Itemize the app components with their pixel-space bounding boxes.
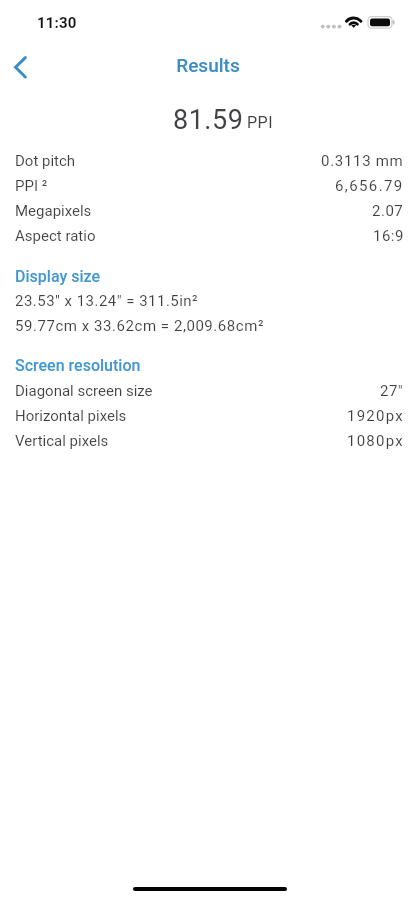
button[interactable]: Diagonal screen size (15, 382, 404, 407)
staticText: Results (0, 54, 416, 76)
button[interactable]: Horizontal pixels (15, 407, 404, 432)
staticText: Display size (15, 267, 101, 286)
staticText: 16:9 (373, 227, 404, 245)
staticText: Megapixels (15, 202, 92, 220)
button[interactable]: Vertical pixels (15, 432, 404, 457)
staticText: Dot pitch (15, 152, 76, 170)
staticText: 11:30 (37, 14, 77, 32)
staticText: Aspect ratio (15, 227, 96, 245)
staticText: PPI ² (15, 177, 48, 195)
button[interactable]: Back (0, 45, 42, 89)
staticText: Vertical pixels (15, 432, 109, 450)
staticText: 27" (380, 382, 404, 400)
button[interactable]: Dot pitch (15, 152, 404, 177)
staticText: Screen resolution (15, 356, 141, 375)
staticText: 1080px (347, 432, 404, 450)
staticText: 81.59 (173, 104, 244, 136)
staticText: 59.77cm x 33.62cm = 2,009.68cm² (15, 317, 264, 335)
staticText: Diagonal screen size (15, 382, 153, 400)
button[interactable]: Aspect ratio (15, 227, 404, 252)
staticText: 0.3113 mm (321, 152, 404, 170)
staticText: 1920px (347, 407, 404, 425)
staticText: PPI (247, 113, 274, 132)
button[interactable]: Megapixels (15, 202, 404, 227)
staticText: 23.53" x 13.24" = 311.5in² (15, 292, 199, 310)
staticText: Horizontal pixels (15, 407, 127, 425)
staticText: 2.07 (372, 202, 404, 220)
button[interactable]: PPI ² (15, 177, 404, 202)
staticText: 6,656.79 (335, 177, 404, 195)
